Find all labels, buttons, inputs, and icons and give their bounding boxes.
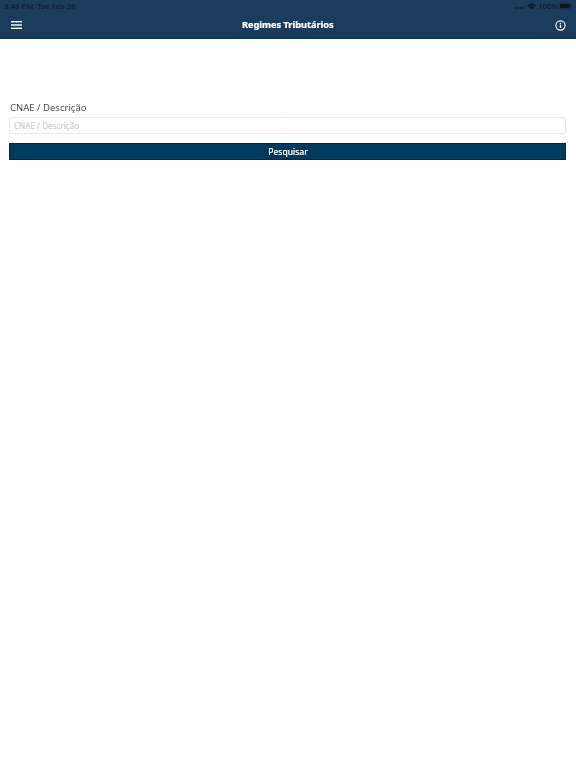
staticText: Pesquisar <box>268 146 308 158</box>
button[interactable]: Information <box>548 13 572 37</box>
staticText: Tue Feb 26 <box>37 1 76 11</box>
button[interactable]: Pesquisar <box>9 143 566 160</box>
button[interactable]: Menu <box>4 13 28 37</box>
button[interactable]: CNAE / Descrição <box>9 117 566 134</box>
staticText: CNAE / Descrição <box>14 120 80 131</box>
staticText: 3:48 PM <box>4 1 34 12</box>
staticText: CNAE / Descrição <box>10 101 87 114</box>
staticText: 100% <box>538 1 559 12</box>
staticText: Regimes Tributários <box>242 18 334 31</box>
